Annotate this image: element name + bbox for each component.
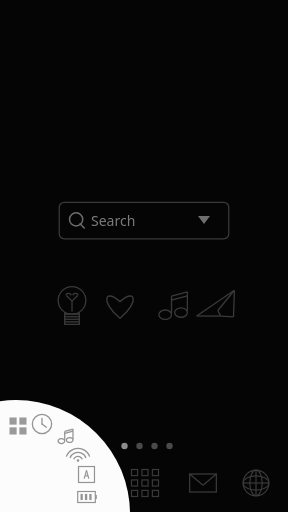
button[interactable]: Send xyxy=(193,280,239,330)
button[interactable]: Favourites xyxy=(98,280,142,330)
button[interactable]: Mail xyxy=(186,466,220,500)
button[interactable]: Ideas xyxy=(50,280,94,330)
staticText: Search xyxy=(91,211,136,230)
button[interactable]: Battery xyxy=(76,487,99,507)
button[interactable]: Clock xyxy=(30,412,54,436)
button[interactable]: Music xyxy=(152,280,196,330)
button[interactable]: All apps xyxy=(128,466,162,500)
button[interactable]: Browser xyxy=(239,466,273,500)
button[interactable]: Search xyxy=(58,201,230,240)
button[interactable]: Widgets xyxy=(7,415,29,437)
button[interactable]: Auto rotate xyxy=(76,464,97,485)
button[interactable]: Wi-Fi xyxy=(66,444,90,466)
button[interactable]: Sound xyxy=(54,423,78,449)
